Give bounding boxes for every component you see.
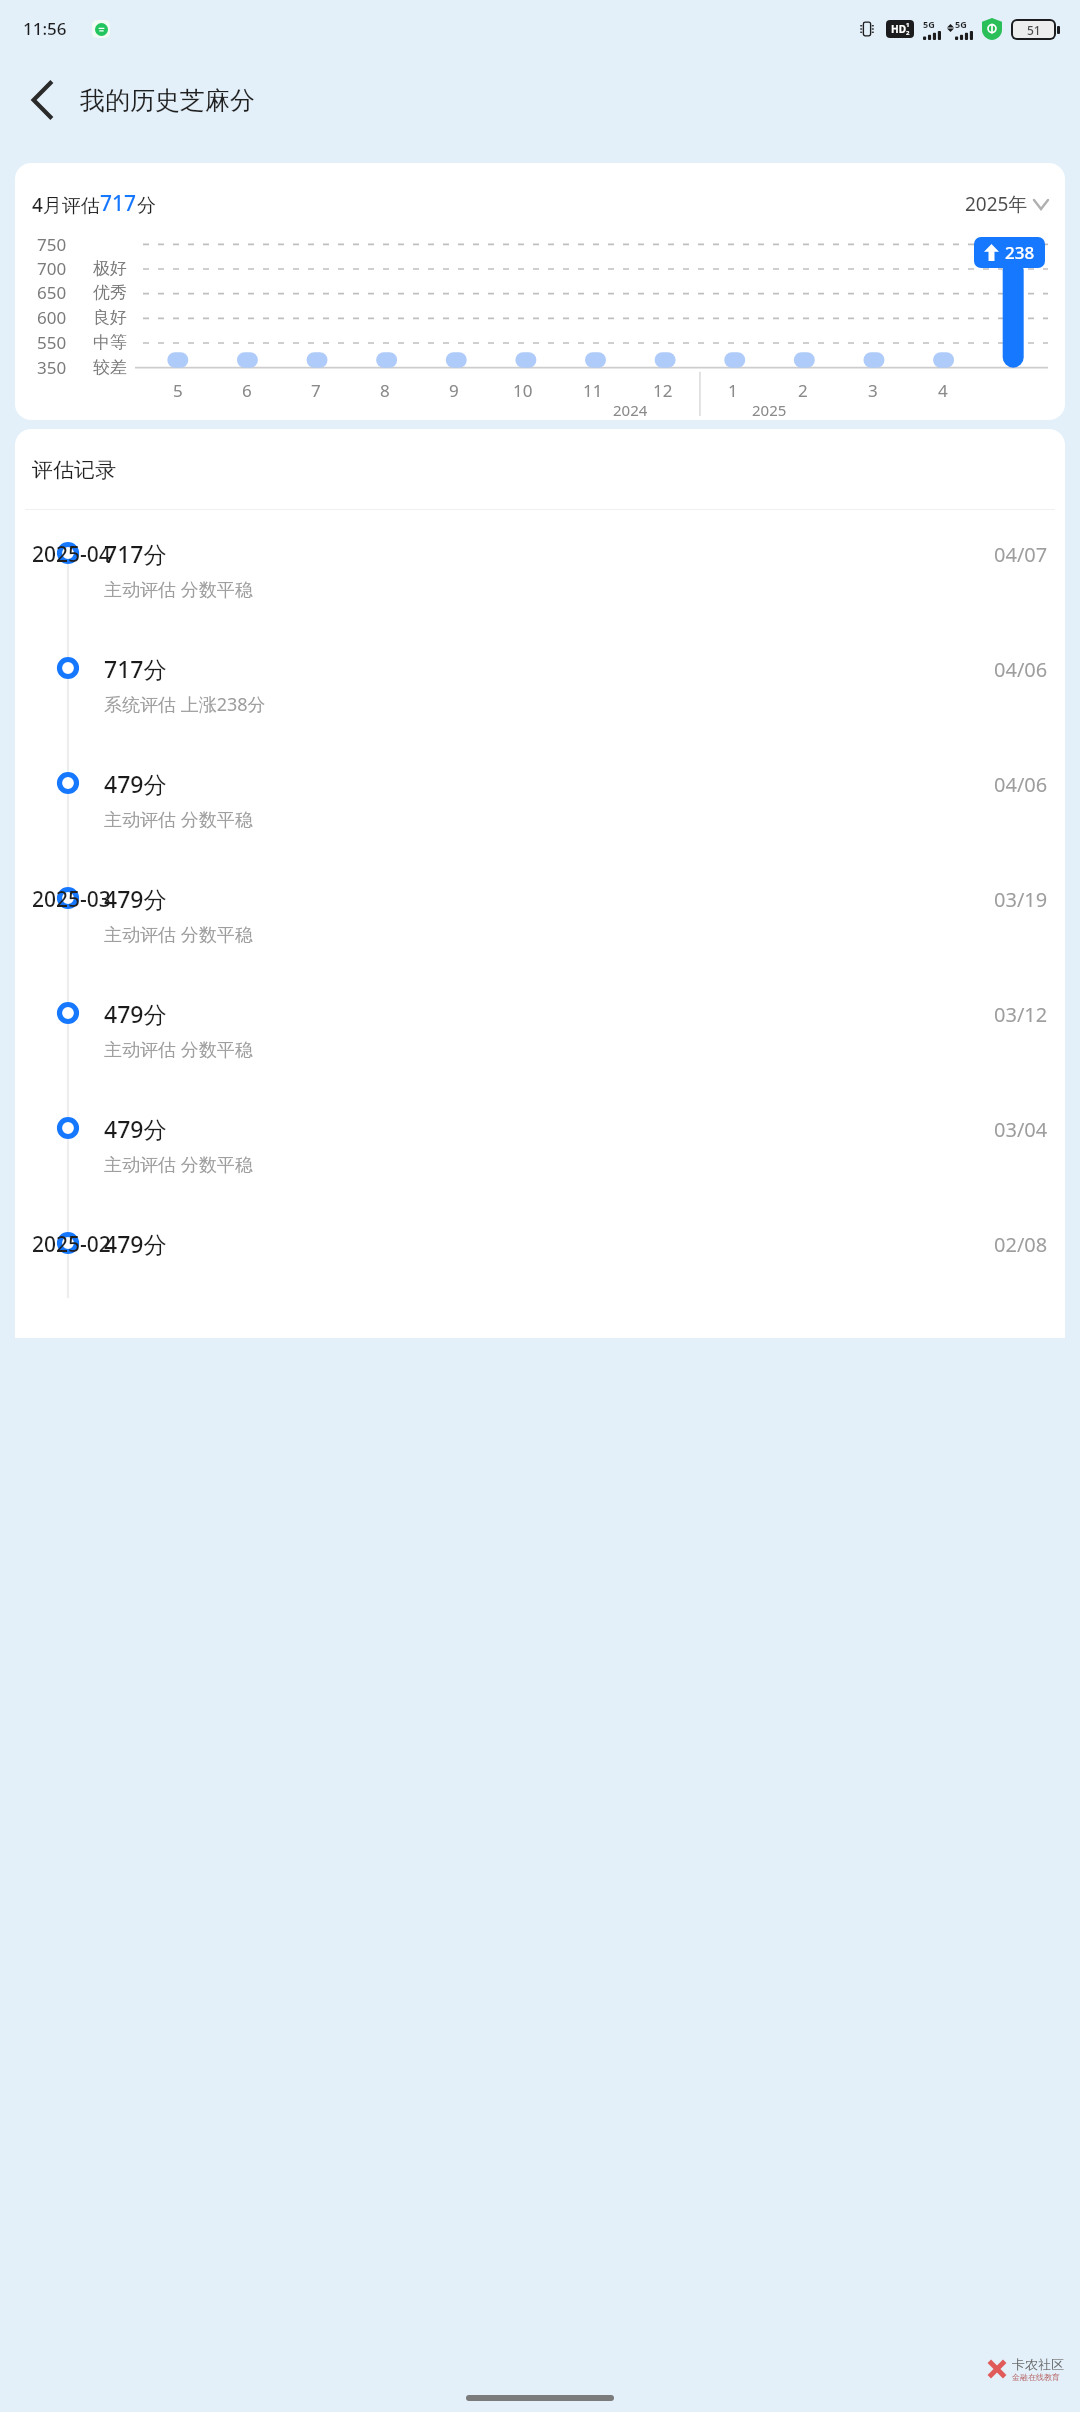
staticText: 主动评估 分数平稳	[104, 577, 253, 602]
staticText: 11:56	[23, 17, 67, 40]
button[interactable]: 2025-02	[15, 1200, 1065, 1298]
staticText: 11	[583, 379, 603, 402]
staticText: 03/12	[994, 1001, 1048, 1028]
staticText: 4	[938, 379, 948, 402]
staticText: 350	[37, 356, 67, 379]
staticText: 2025年	[965, 191, 1028, 217]
staticText: 04/06	[994, 771, 1048, 798]
staticText: HD	[891, 22, 906, 36]
staticText: 10	[513, 379, 533, 402]
staticText: 717分	[104, 653, 167, 684]
staticText: 479分	[104, 998, 167, 1029]
staticText: 1	[906, 21, 910, 29]
staticText: 2	[906, 29, 910, 37]
staticText: 03/19	[994, 886, 1048, 913]
staticText: 717分	[104, 538, 167, 569]
staticText: 2025-04	[32, 540, 111, 569]
staticText: 479分	[104, 1113, 167, 1144]
button[interactable]: Back	[14, 72, 70, 128]
staticText: 12	[653, 379, 673, 402]
staticText: 04/07	[994, 541, 1048, 568]
staticText: 中等	[93, 332, 127, 353]
staticText: 主动评估 分数平稳	[104, 1152, 253, 1177]
staticText: 5G	[955, 18, 967, 30]
staticText: 479分	[104, 768, 167, 799]
staticText: 04/06	[994, 656, 1048, 683]
staticText: 550	[37, 331, 67, 354]
button[interactable]: 479分	[15, 1085, 1065, 1200]
staticText: 717	[100, 189, 137, 218]
staticText: 评估记录	[32, 457, 116, 483]
staticText: 03/04	[994, 1116, 1048, 1143]
staticText: 4月评估	[32, 192, 100, 218]
staticText: 主动评估 分数平稳	[104, 1037, 253, 1062]
staticText: 5	[173, 379, 183, 402]
staticText: 6	[242, 379, 252, 402]
staticText: 02/08	[994, 1231, 1048, 1258]
staticText: 金融在线教育	[1012, 2372, 1060, 2382]
staticText: 2	[798, 379, 808, 402]
staticText: 600	[37, 306, 67, 329]
staticText: 主动评估 分数平稳	[104, 807, 253, 832]
staticText: 9	[449, 379, 459, 402]
staticText: 7	[311, 379, 321, 402]
staticText: 分	[137, 194, 156, 218]
button[interactable]: 479分	[15, 970, 1065, 1085]
button[interactable]: 2025-04	[15, 510, 1065, 625]
button[interactable]: 717分	[15, 625, 1065, 740]
staticText: 8	[380, 379, 390, 402]
staticText: 479分	[104, 883, 167, 914]
staticText: 2025-03	[32, 885, 111, 914]
staticText: 卡农社区	[1012, 2356, 1064, 2372]
staticText: 良好	[93, 307, 127, 328]
button[interactable]: 479分	[15, 740, 1065, 855]
staticText: 系统评估 上涨238分	[104, 692, 266, 717]
staticText: 1	[728, 379, 738, 402]
staticText: 极好	[93, 258, 127, 279]
button[interactable]: 2025-03	[15, 855, 1065, 970]
staticText: 2025	[752, 400, 787, 420]
button[interactable]: 2025年	[965, 191, 1048, 217]
staticText: 2025-02	[32, 1230, 111, 1259]
staticText: 750	[37, 233, 67, 256]
staticText: 51	[1027, 22, 1041, 38]
staticText: 5G	[923, 18, 935, 30]
staticText: 479分	[104, 1228, 167, 1259]
staticText: 700	[37, 257, 67, 280]
staticText: 优秀	[93, 282, 127, 303]
staticText: 650	[37, 281, 67, 304]
staticText: 我的历史芝麻分	[80, 85, 255, 116]
staticText: 238	[1005, 241, 1035, 264]
staticText: 主动评估 分数平稳	[104, 922, 253, 947]
staticText: 较差	[93, 357, 127, 378]
staticText: 2024	[613, 400, 648, 420]
staticText: 3	[868, 379, 878, 402]
